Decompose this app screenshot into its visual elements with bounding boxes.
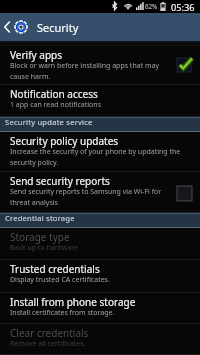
button[interactable]: Navigate up [0, 13, 14, 41]
staticText: 62% [145, 2, 158, 10]
staticText: 1 app can read notifications [10, 100, 102, 110]
button[interactable]: Trusted credentials [0, 260, 200, 293]
staticText: Back up to hardware [10, 243, 78, 253]
staticText: Display trusted CA certificates. [10, 275, 110, 285]
button[interactable]: Security policy updates [0, 132, 200, 172]
staticText: Clear credentials [10, 326, 89, 340]
staticText: Security policy updates [10, 134, 119, 148]
staticText: Trusted credentials [10, 262, 100, 276]
button[interactable]: Notification access [0, 85, 200, 117]
staticText: Install certificates from storage. [10, 308, 115, 318]
staticText: Notification access [10, 87, 98, 101]
staticText: Security update service [5, 117, 93, 127]
staticText: Credential storage [5, 213, 75, 223]
staticText: Increase the security of your phone by u… [10, 147, 181, 167]
button[interactable]: Verify apps [0, 46, 200, 85]
staticText: Install from phone storage [10, 295, 136, 309]
button[interactable]: Storage type [0, 228, 200, 260]
staticText: Block or warn before installing apps tha… [10, 61, 160, 81]
button[interactable]: Install from phone storage [0, 293, 200, 324]
staticText: 05:36 [171, 1, 195, 14]
staticText: Send security reports to Samsung via Wi-… [10, 187, 162, 207]
button[interactable]: Send security reports [0, 172, 200, 213]
staticText: Security [37, 20, 79, 35]
staticText: Remove all certificates. [10, 339, 86, 349]
staticText: Verify apps [10, 48, 62, 62]
staticText: Storage type [10, 230, 70, 244]
staticText: Send security reports [10, 174, 110, 188]
button[interactable]: Clear credentials [0, 324, 200, 355]
